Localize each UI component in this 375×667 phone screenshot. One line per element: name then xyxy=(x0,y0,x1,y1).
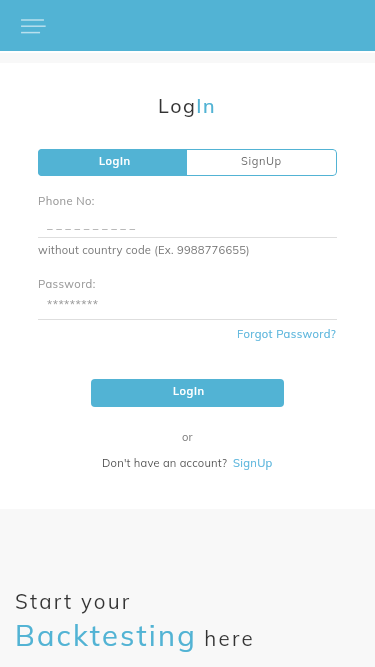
staticText: LogIn xyxy=(173,384,205,398)
button[interactable]: Open navigation menu xyxy=(14,14,48,42)
staticText: or xyxy=(182,430,193,444)
staticText: SignUp xyxy=(241,154,282,168)
button[interactable]: Forgot Password? xyxy=(237,327,337,341)
button[interactable] xyxy=(38,149,187,176)
button[interactable]: LogIn xyxy=(91,379,284,407)
staticText: ********* xyxy=(47,297,99,312)
button[interactable]: SignUp xyxy=(233,456,273,470)
staticText: Backtesting here xyxy=(15,617,255,653)
staticText: _ _ _ _ _ _ _ _ _ _ xyxy=(47,218,136,232)
button[interactable] xyxy=(187,149,337,176)
staticText: without country code (Ex. 9988776655) xyxy=(38,243,250,257)
staticText: LogIn xyxy=(99,154,131,168)
staticText: Start your xyxy=(15,588,132,614)
staticText: Password: xyxy=(38,277,96,291)
staticText: Don't have an account? xyxy=(102,456,228,470)
staticText: Phone No: xyxy=(38,194,95,208)
staticText: LogIn xyxy=(158,93,217,118)
